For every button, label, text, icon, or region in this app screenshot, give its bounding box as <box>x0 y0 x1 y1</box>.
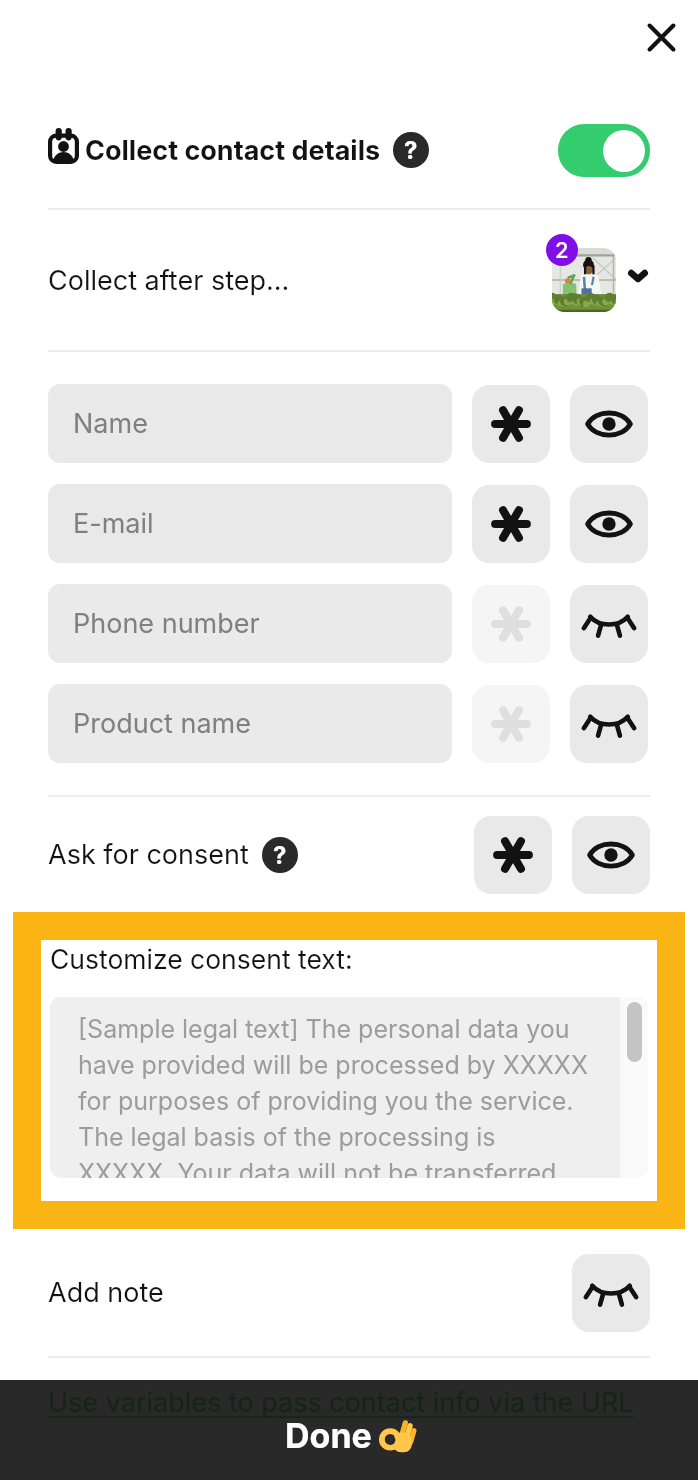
button[interactable]: Product name <box>48 684 452 763</box>
button[interactable]: Visible <box>570 385 648 463</box>
staticText: Collect after step... <box>48 264 290 297</box>
button[interactable]: Phone number <box>48 584 452 663</box>
staticText: Customize consent text: <box>50 943 353 975</box>
button[interactable]: Collect after step... <box>0 210 698 350</box>
staticText: Add note <box>48 1276 164 1309</box>
staticText: [Sample legal text] The personal data yo… <box>78 1014 590 1178</box>
button[interactable]: Close <box>637 13 685 61</box>
staticText: Done <box>285 1415 372 1456</box>
button[interactable]: Expand <box>622 254 654 298</box>
button[interactable]: Help <box>262 837 298 873</box>
button[interactable]: Optional <box>472 585 550 663</box>
button[interactable]: E-mail <box>48 484 452 563</box>
button[interactable]: Optional <box>472 685 550 763</box>
staticText: 2 <box>555 237 569 264</box>
staticText: Use variables to pass contact info via t… <box>48 1386 634 1419</box>
staticText: Name <box>73 407 148 440</box>
button[interactable]: Hidden <box>572 1254 650 1332</box>
button[interactable]: Hidden <box>570 685 648 763</box>
staticText: Ask for consent <box>48 838 249 871</box>
button[interactable]: Help <box>393 132 429 168</box>
staticText: E-mail <box>73 507 154 540</box>
staticText: ? <box>404 136 418 165</box>
staticText: Collect contact details <box>85 134 381 167</box>
button[interactable]: Required <box>472 385 550 463</box>
button[interactable]: Required <box>474 816 552 894</box>
button[interactable]: Done <box>0 1380 698 1480</box>
button[interactable]: Visible <box>570 485 648 563</box>
button[interactable]: Hidden <box>570 585 648 663</box>
staticText: Product name <box>73 707 252 740</box>
staticText: ? <box>273 841 287 870</box>
button[interactable]: Collect contact details <box>0 92 698 208</box>
staticText: Phone number <box>73 607 260 640</box>
button[interactable]: Use variables to pass contact info via t… <box>48 1386 634 1419</box>
button[interactable]: Visible <box>572 816 650 894</box>
button[interactable]: Name <box>48 384 452 463</box>
button[interactable]: Required <box>472 485 550 563</box>
button[interactable]: Step 2 preview <box>552 248 616 312</box>
button[interactable]: Collect contact details on <box>558 124 650 177</box>
